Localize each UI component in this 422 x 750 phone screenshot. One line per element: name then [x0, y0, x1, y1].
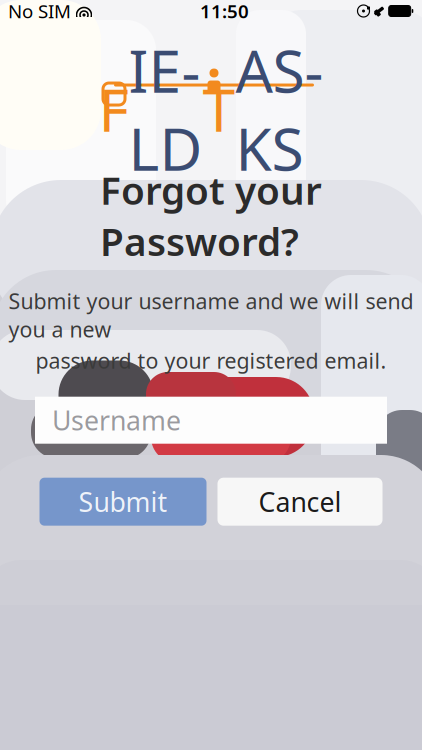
- button[interactable]: Submit: [39, 478, 206, 526]
- staticText: Submit your username and we will send yo…: [8, 287, 413, 343]
- staticText: T: [202, 70, 235, 148]
- staticText: 11:50: [200, 0, 249, 23]
- staticText: IELD: [128, 31, 202, 187]
- staticText: [385, 2, 388, 20]
- staticText: F: [98, 70, 128, 148]
- button[interactable]: Cancel: [217, 478, 382, 526]
- staticText: ASKS: [235, 31, 323, 187]
- staticText: Submit: [78, 484, 167, 519]
- staticText: Forgot your Password?: [100, 164, 322, 267]
- staticText: [370, 2, 373, 20]
- staticText: Cancel: [258, 484, 341, 519]
- staticText: Username: [52, 402, 181, 438]
- staticText: password to your registered email.: [35, 346, 386, 375]
- staticText: No SIM: [8, 0, 71, 23]
